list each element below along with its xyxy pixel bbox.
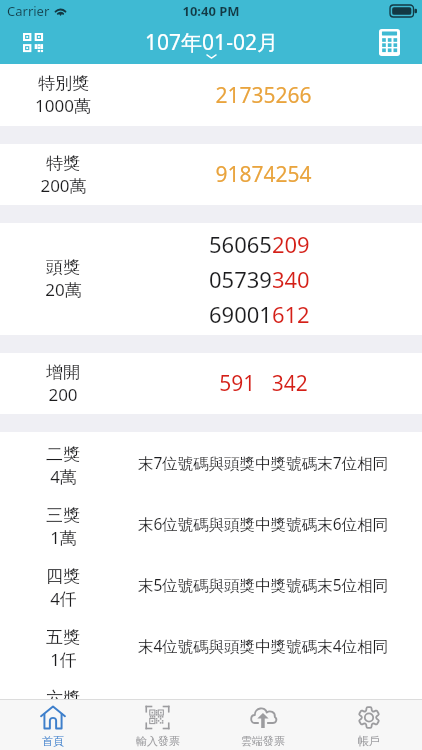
staticText: 特別獎 (38, 73, 89, 94)
staticText: 107年01-02月 (145, 28, 278, 57)
staticText: 六獎 (46, 688, 80, 699)
staticText: 末6位號碼與頭獎中獎號碼末6位相同 (138, 513, 389, 534)
button[interactable]: Scan QR code (0, 21, 66, 64)
button[interactable]: 特別獎 (0, 64, 422, 126)
staticText: 05739340 (209, 264, 310, 294)
staticText: 末4位號碼與頭獎中獎號碼末4位相同 (138, 635, 389, 656)
button[interactable]: Calculator (356, 21, 422, 64)
staticText: 91874254 (215, 160, 312, 189)
staticText: 帳戶 (358, 734, 380, 748)
staticText: 雲端發票 (241, 734, 285, 748)
staticText: 末7位號碼與頭獎中獎號碼末7位相同 (138, 452, 389, 473)
staticText: 二獎 (46, 444, 80, 465)
button[interactable]: 增開 (0, 353, 422, 414)
button[interactable]: 頭獎 (0, 223, 422, 335)
staticText: 增開 (46, 362, 80, 383)
staticText: 1仟 (50, 648, 77, 671)
button[interactable]: 輸入發票 (105, 699, 210, 750)
staticText: 三獎 (46, 505, 80, 526)
staticText: 10:40 PM (182, 2, 240, 20)
staticText: 輸入發票 (136, 734, 180, 748)
staticText: 56065209 (209, 229, 310, 259)
staticText: Carrier (7, 2, 50, 20)
staticText: 1000萬 (35, 94, 91, 117)
button[interactable]: 二獎 (0, 432, 422, 493)
staticText: 4萬 (50, 465, 77, 488)
staticText: 特獎 (46, 153, 80, 174)
staticText: 4仟 (50, 587, 77, 610)
staticText: 69001612 (209, 299, 310, 329)
button[interactable]: 四獎 (0, 554, 422, 615)
staticText: 四獎 (46, 566, 80, 587)
button[interactable]: 三獎 (0, 493, 422, 554)
staticText: 21735266 (215, 81, 312, 110)
button[interactable]: 帳戶 (316, 699, 422, 750)
staticText: 首頁 (42, 734, 64, 748)
button[interactable]: 六獎 (0, 676, 422, 699)
button[interactable]: 107年01-02月 (131, 21, 291, 64)
button[interactable]: 首頁 (0, 699, 105, 750)
staticText: 頭獎 (46, 257, 80, 278)
button[interactable]: 雲端發票 (210, 699, 316, 750)
staticText: 200萬 (40, 174, 87, 197)
staticText: 200 (48, 383, 78, 406)
staticText: 591 342 (219, 369, 308, 398)
button[interactable]: 特獎 (0, 144, 422, 205)
staticText: 1萬 (50, 526, 77, 549)
staticText: 20萬 (45, 278, 82, 301)
staticText: 五獎 (46, 627, 80, 648)
staticText: 末5位號碼與頭獎中獎號碼末5位相同 (138, 574, 389, 595)
button[interactable]: 五獎 (0, 615, 422, 676)
